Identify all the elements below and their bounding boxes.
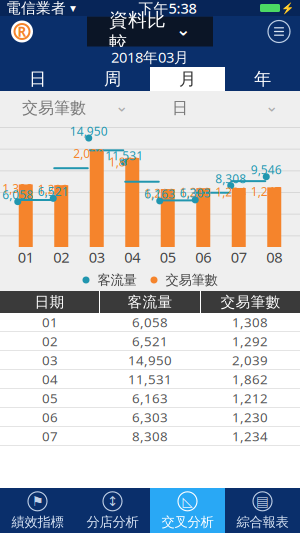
staticText: 日期 — [34, 293, 64, 311]
staticText: R — [17, 23, 26, 40]
staticText: ▾ — [66, 1, 76, 15]
staticText: ⌄ — [176, 20, 191, 39]
staticText: 1,234 — [232, 427, 268, 445]
staticText: ↕ — [107, 494, 118, 509]
staticText: 1,308 — [2, 180, 33, 196]
staticText: 06 — [42, 408, 58, 426]
button[interactable]: 日 — [150, 94, 300, 122]
staticText: 03 — [89, 247, 105, 267]
staticText: 11,531 — [128, 370, 172, 388]
button[interactable]: 日 — [0, 67, 75, 91]
button[interactable]: 交易筆數 — [0, 94, 150, 122]
staticText: 6,058 — [2, 187, 33, 203]
staticText: 1,234 — [215, 184, 246, 200]
staticText: 客流量 — [127, 293, 172, 311]
staticText: 1,212 — [144, 185, 175, 201]
staticText: 1,292 — [38, 181, 69, 197]
staticText: 01 — [42, 313, 58, 331]
staticText: 1,230 — [232, 408, 268, 426]
button[interactable]: ◺ — [150, 488, 225, 533]
staticText: 6,521 — [38, 183, 69, 199]
staticText: 07 — [231, 247, 247, 267]
staticText: 01 — [18, 247, 34, 267]
staticText: 1,230 — [180, 184, 211, 200]
staticText: 6,521 — [132, 332, 168, 350]
staticText: ⚑ — [31, 494, 43, 509]
staticText: 07 — [42, 427, 58, 445]
staticText: 交易筆數 — [165, 272, 217, 288]
button[interactable]: ▤ — [225, 488, 300, 533]
staticText: 日 — [172, 98, 188, 118]
staticText: 2,039 — [73, 145, 104, 161]
staticText: 6,303 — [180, 185, 211, 201]
button[interactable]: ⚑ — [0, 488, 75, 533]
staticText: 分店分析 — [86, 514, 138, 530]
staticText: 年 — [254, 68, 271, 90]
staticText: 03 — [42, 351, 58, 369]
staticText: 1,247 — [251, 183, 282, 199]
button[interactable]: Home — [4, 19, 40, 43]
staticText: 1,862 — [109, 154, 140, 170]
staticText: 6,163 — [144, 186, 175, 202]
staticText: 08 — [266, 247, 282, 267]
staticText: 下午5:38 — [138, 0, 196, 18]
staticText: ⚡ — [281, 2, 294, 14]
staticText: ⌄ — [115, 97, 128, 115]
staticText: ▤ — [256, 494, 269, 509]
staticText: 02 — [42, 332, 58, 350]
staticText: 04 — [42, 370, 58, 388]
staticText: 02 — [53, 247, 69, 267]
staticText: 8,308 — [215, 171, 246, 186]
staticText: 交易筆數 — [220, 293, 280, 311]
staticText: 14,950 — [70, 123, 108, 139]
staticText: 日 — [29, 68, 46, 90]
staticText: 9,546 — [251, 162, 282, 178]
button[interactable]: Menu — [262, 18, 296, 44]
staticText: 05 — [42, 389, 58, 407]
button[interactable]: 月 — [150, 67, 225, 91]
staticText: ⌄ — [265, 97, 278, 115]
staticText: 1,308 — [232, 313, 268, 331]
staticText: 06 — [195, 247, 211, 267]
staticText: 電信業者 — [6, 0, 66, 17]
staticText: 6,163 — [132, 389, 168, 407]
staticText: 1,862 — [232, 370, 268, 388]
button[interactable]: 年 — [225, 67, 300, 91]
staticText: 周 — [104, 68, 121, 90]
staticText: 2,039 — [232, 351, 268, 369]
button[interactable]: 資料比較 — [87, 16, 213, 46]
staticText: 11,531 — [105, 147, 143, 163]
staticText: ◺ — [182, 494, 192, 509]
staticText: 交易筆數 — [22, 98, 86, 118]
staticText: 客流量 — [97, 272, 136, 288]
staticText: 1,212 — [232, 389, 268, 407]
staticText: 2018年03月 — [111, 47, 189, 67]
staticText: 05 — [160, 247, 176, 267]
staticText: 6,058 — [132, 313, 168, 331]
staticText: 6,303 — [132, 408, 168, 426]
staticText: 交叉分析 — [161, 514, 213, 530]
staticText: 績效指標 — [11, 514, 63, 530]
staticText: 1,292 — [232, 332, 268, 350]
staticText: 04 — [124, 247, 140, 267]
staticText: 綜合報表 — [236, 514, 288, 530]
staticText: 14,950 — [128, 351, 172, 369]
staticText: 資料比較 — [109, 9, 166, 54]
button[interactable]: ↕ — [75, 488, 150, 533]
staticText: 8,308 — [132, 427, 168, 445]
staticText: 月 — [179, 68, 196, 90]
button[interactable]: 周 — [75, 67, 150, 91]
